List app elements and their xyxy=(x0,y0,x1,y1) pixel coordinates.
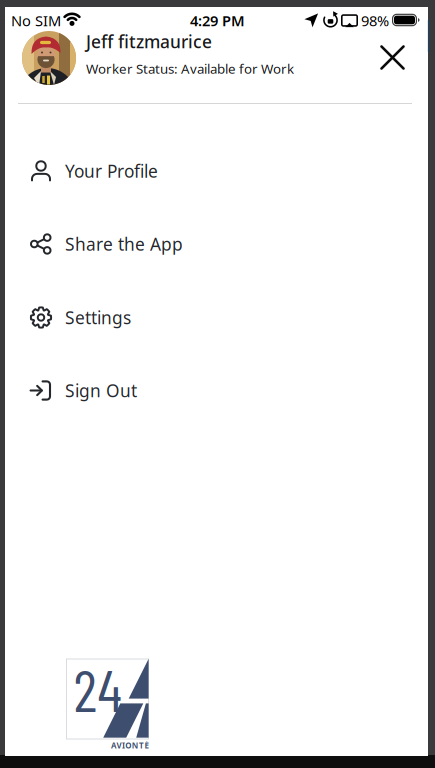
button[interactable]: Your Profile xyxy=(5,144,428,198)
button[interactable]: Settings xyxy=(5,290,428,344)
button[interactable]: Close xyxy=(378,43,406,71)
staticText: 4:29 PM xyxy=(190,11,245,30)
staticText: 98% xyxy=(361,11,389,30)
button[interactable]: Sign Out xyxy=(5,363,428,417)
staticText: No SIM xyxy=(11,11,61,30)
staticText: Settings xyxy=(65,306,131,329)
staticText: Your Profile xyxy=(65,159,158,182)
staticText: Sign Out xyxy=(65,379,137,402)
staticText: Share the App xyxy=(65,232,183,255)
staticText: Jeff fitzmaurice xyxy=(86,30,212,53)
staticText: Worker Status: Available for Work xyxy=(86,60,294,77)
button[interactable]: Share the App xyxy=(5,217,428,271)
staticText: 24 xyxy=(73,653,121,724)
staticText: AVIONTÉ xyxy=(111,740,148,751)
